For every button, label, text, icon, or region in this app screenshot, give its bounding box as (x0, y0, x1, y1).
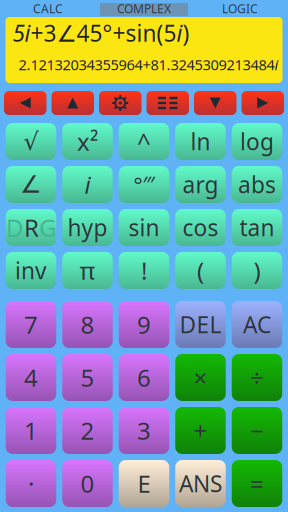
staticText: log (240, 126, 274, 156)
button[interactable]: ∠ (6, 166, 56, 203)
staticText: ) (182, 18, 189, 48)
staticText: tan (239, 212, 274, 242)
button[interactable]: CALC (0, 0, 96, 17)
button[interactable]: DRG mode (6, 209, 56, 246)
staticText: ANS (179, 468, 222, 498)
staticText: 9 (137, 309, 151, 340)
staticText: abs (238, 169, 276, 199)
staticText: DEL (179, 309, 221, 339)
staticText: ! (141, 255, 147, 286)
button[interactable]: °‴ (119, 166, 169, 203)
staticText: COMPLEX (117, 0, 171, 16)
staticText: G (39, 212, 56, 243)
button[interactable]: 3 (119, 407, 169, 454)
staticText: 2.12132034355964+81.3245309213484 (18, 55, 274, 74)
staticText: 0 (80, 468, 94, 499)
button[interactable]: + (175, 407, 226, 454)
staticText: hyp (67, 212, 107, 242)
button[interactable]: E (119, 460, 169, 507)
staticText: + (193, 415, 207, 446)
button[interactable]: 2 (62, 407, 113, 454)
button[interactable]: 5 (62, 354, 113, 401)
button[interactable]: 0 (62, 460, 113, 507)
button[interactable]: Move up (51, 91, 94, 115)
staticText: x² (77, 126, 98, 157)
button[interactable]: inv (6, 252, 56, 289)
button[interactable]: Settings (99, 91, 141, 115)
button[interactable]: ^ (119, 123, 169, 160)
staticText: ln (190, 126, 210, 156)
button[interactable]: 6 (119, 354, 169, 401)
button[interactable]: hyp (62, 209, 113, 246)
button[interactable]: 1 (6, 407, 56, 454)
staticText: √ (23, 128, 38, 155)
button[interactable]: DEL (175, 301, 226, 348)
button[interactable]: AC (232, 301, 282, 348)
button[interactable]: ) (232, 252, 282, 289)
button[interactable]: Move down (194, 91, 236, 115)
button[interactable]: ÷ (232, 354, 282, 401)
button[interactable]: i (62, 166, 113, 203)
staticText: · (28, 468, 34, 499)
staticText: ∠ (20, 171, 42, 198)
staticText: 1 (24, 415, 38, 446)
staticText: i (84, 169, 90, 200)
button[interactable]: LOGIC (192, 0, 288, 17)
staticText: cos (182, 212, 218, 242)
button[interactable]: cos (175, 209, 226, 246)
staticText: − (250, 415, 264, 446)
button[interactable]: arg (175, 166, 226, 203)
button[interactable]: abs (232, 166, 282, 203)
button[interactable]: = (232, 460, 282, 507)
staticText: AC (243, 309, 271, 339)
button[interactable]: Menu (146, 91, 189, 115)
staticText: = (250, 468, 264, 499)
staticText: π (79, 255, 95, 286)
staticText: i (274, 55, 278, 74)
button[interactable]: x² (62, 123, 113, 160)
button[interactable]: 4 (6, 354, 56, 401)
button[interactable]: COMPLEX (96, 0, 192, 17)
button[interactable]: Move right (241, 91, 284, 115)
button[interactable]: · (6, 460, 56, 507)
button[interactable]: 8 (62, 301, 113, 348)
staticText: LOGIC (222, 0, 258, 16)
staticText: 4 (24, 362, 38, 393)
staticText: i (176, 18, 182, 48)
staticText: × (193, 362, 207, 393)
staticText: ^ (137, 126, 151, 157)
button[interactable]: Move left (4, 91, 46, 115)
staticText: D (6, 212, 24, 243)
button[interactable]: ! (119, 252, 169, 289)
button[interactable]: ( (175, 252, 226, 289)
staticText: 6 (137, 362, 151, 393)
staticText: 2 (80, 415, 94, 446)
button[interactable]: × (175, 354, 226, 401)
button[interactable]: ANS (175, 460, 226, 507)
staticText: inv (15, 255, 47, 285)
staticText: 5 (80, 362, 94, 393)
button[interactable]: log (232, 123, 282, 160)
staticText: sin (128, 212, 159, 242)
staticText: ÷ (250, 362, 264, 393)
staticText: i (24, 18, 30, 48)
staticText: arg (182, 169, 218, 199)
staticText: °‴ (133, 170, 154, 199)
staticText: 8 (80, 309, 94, 340)
staticText: E (137, 468, 150, 499)
button[interactable]: sin (119, 209, 169, 246)
button[interactable]: − (232, 407, 282, 454)
staticText: 5 (12, 18, 24, 48)
staticText: R (24, 212, 39, 243)
button[interactable]: ln (175, 123, 226, 160)
button[interactable]: π (62, 252, 113, 289)
button[interactable]: 7 (6, 301, 56, 348)
staticText: 3 (137, 415, 151, 446)
staticText: 7 (24, 309, 38, 340)
staticText: ( (197, 255, 204, 286)
button[interactable]: √ (6, 123, 56, 160)
button[interactable]: 9 (119, 301, 169, 348)
staticText: +3∠45°+sin(5 (30, 18, 176, 48)
staticText: ) (253, 255, 260, 286)
button[interactable]: tan (232, 209, 282, 246)
